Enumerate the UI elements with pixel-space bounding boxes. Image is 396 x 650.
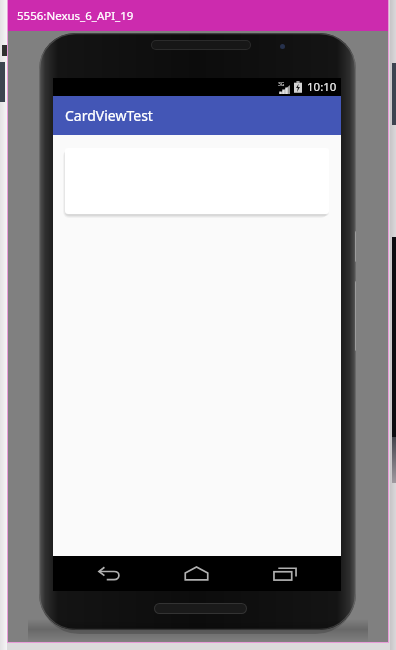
staticText: 10:10 xyxy=(307,79,337,95)
button[interactable]: Back xyxy=(81,556,137,591)
staticText: CardViewTest xyxy=(65,106,153,125)
button[interactable]: CardViewTest xyxy=(53,96,341,135)
button[interactable]: Home xyxy=(168,556,224,591)
staticText: 5556:Nexus_6_API_19 xyxy=(17,8,134,24)
button[interactable]: Recents xyxy=(257,556,313,591)
staticText: 3G xyxy=(278,81,285,88)
